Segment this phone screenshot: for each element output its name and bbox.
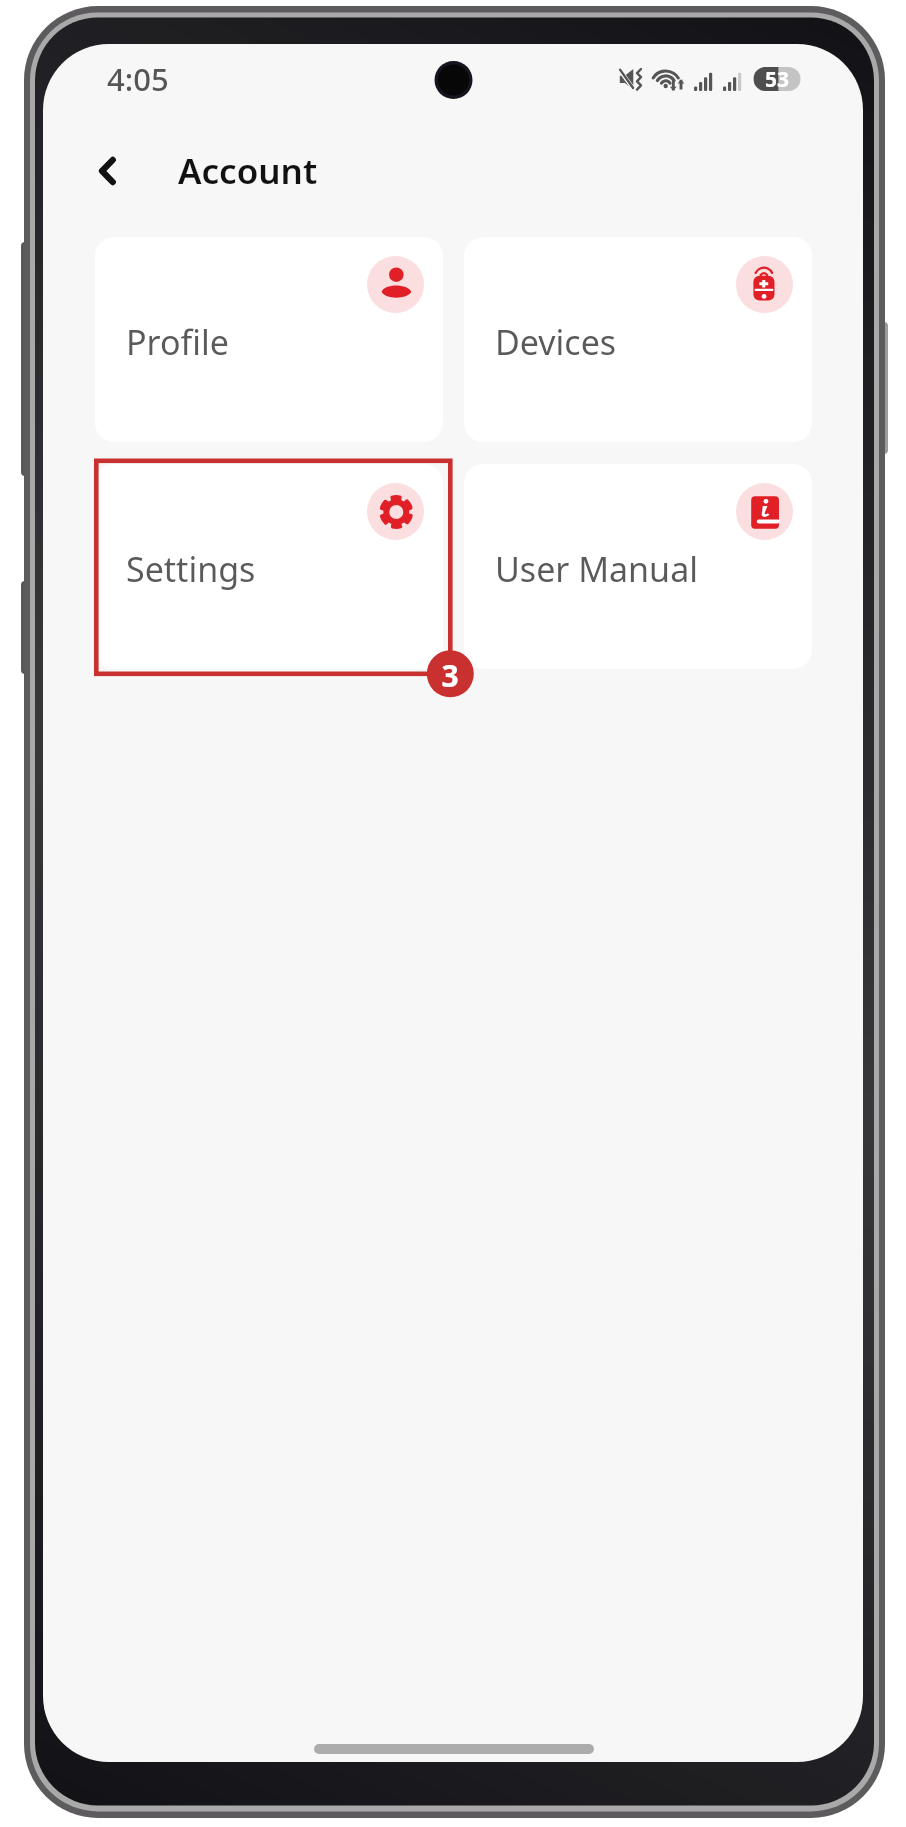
staticText: Settings (126, 546, 256, 592)
staticText: 4:05 (107, 58, 169, 100)
staticText: Account (178, 147, 318, 195)
button[interactable]: Settings (95, 464, 443, 669)
button[interactable]: Back (76, 139, 140, 203)
button[interactable]: Devices (464, 237, 812, 442)
button[interactable]: Profile (95, 237, 443, 442)
staticText: Profile (126, 319, 229, 365)
staticText: User Manual (495, 546, 698, 592)
staticText: 3 (434, 655, 466, 696)
staticText: 53 (755, 65, 799, 94)
staticText: Devices (495, 319, 617, 365)
button[interactable]: User Manual (464, 464, 812, 669)
